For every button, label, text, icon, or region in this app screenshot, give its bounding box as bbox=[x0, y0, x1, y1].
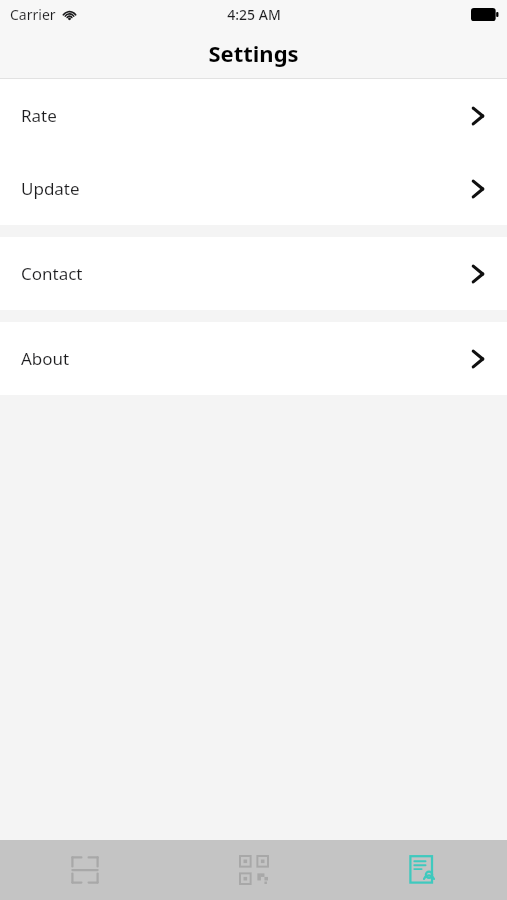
button[interactable]: Rate bbox=[0, 79, 507, 152]
button[interactable]: Settings bbox=[338, 840, 507, 900]
staticText: About bbox=[21, 347, 70, 370]
staticText: Settings bbox=[208, 38, 299, 68]
button[interactable]: About bbox=[0, 322, 507, 395]
staticText: Rate bbox=[21, 104, 57, 127]
button[interactable]: QR code bbox=[169, 840, 338, 900]
staticText: Contact bbox=[21, 262, 83, 285]
staticText: Carrier bbox=[10, 5, 56, 24]
staticText: Update bbox=[21, 177, 80, 200]
button[interactable]: Update bbox=[0, 152, 507, 225]
button[interactable]: Contact bbox=[0, 237, 507, 310]
button[interactable]: Scan barcode bbox=[0, 840, 169, 900]
staticText: 4:25 AM bbox=[227, 5, 281, 24]
